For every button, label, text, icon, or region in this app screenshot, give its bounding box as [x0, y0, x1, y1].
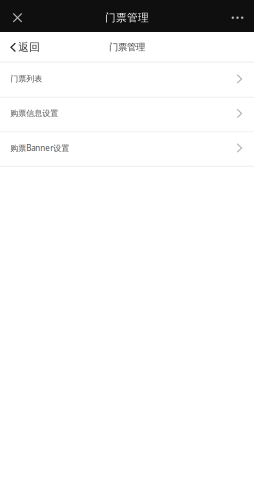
- staticText: 门票管理: [109, 41, 145, 53]
- button[interactable]: 购票Banner设置: [0, 132, 254, 167]
- button[interactable]: 门票列表: [0, 63, 254, 98]
- button[interactable]: More options: [222, 4, 252, 32]
- staticText: 门票列表: [10, 74, 42, 84]
- staticText: 购票Banner设置: [10, 143, 69, 153]
- button[interactable]: 购票信息设置: [0, 98, 254, 132]
- staticText: 门票管理: [105, 11, 149, 24]
- staticText: 返回: [18, 41, 40, 54]
- button[interactable]: Close: [2, 4, 32, 32]
- button[interactable]: 返回: [0, 32, 48, 61]
- staticText: 购票信息设置: [10, 108, 58, 118]
